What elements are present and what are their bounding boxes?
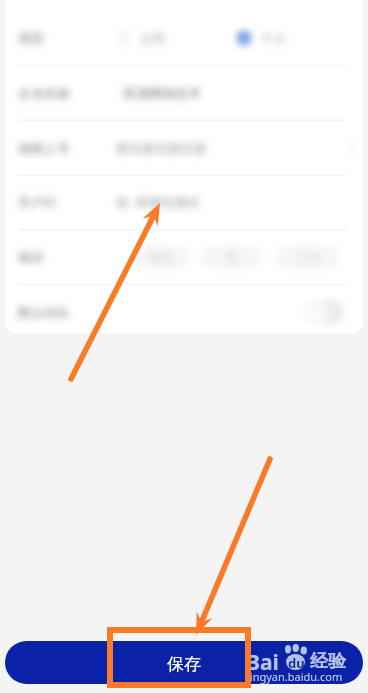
staticText: 测试测试测试测 xyxy=(115,140,206,156)
staticText: Bai xyxy=(246,648,279,677)
staticText: 保存 xyxy=(167,654,201,675)
staticText: 纳税人号 xyxy=(18,140,70,156)
button[interactable]: 个人 xyxy=(237,25,287,51)
staticText: 类型 xyxy=(18,30,44,46)
staticText: 默认抬头 xyxy=(18,304,70,320)
staticText: 双测网络技术 xyxy=(123,85,201,101)
staticText: 选 填测试测试 xyxy=(115,193,200,211)
staticText: 企业名称 xyxy=(18,85,70,101)
staticText: 电话 xyxy=(18,249,44,265)
staticText: 开户行 xyxy=(18,194,57,210)
button[interactable]: Toggle default xyxy=(305,300,345,324)
staticText: 餐饮 xyxy=(149,250,173,265)
button[interactable]: 餐饮 xyxy=(133,245,189,269)
staticText: 经验 xyxy=(310,650,346,673)
staticText: 公司 xyxy=(140,30,166,46)
staticText: 个人 xyxy=(261,30,287,46)
button[interactable]: 商 xyxy=(200,245,262,269)
button[interactable]: 公司 xyxy=(117,25,166,51)
staticText: du xyxy=(288,654,305,672)
button[interactable]: 日用 xyxy=(275,245,340,269)
button[interactable]: 保存 xyxy=(5,641,363,684)
staticText: jingyan.baidu.com xyxy=(247,669,343,684)
